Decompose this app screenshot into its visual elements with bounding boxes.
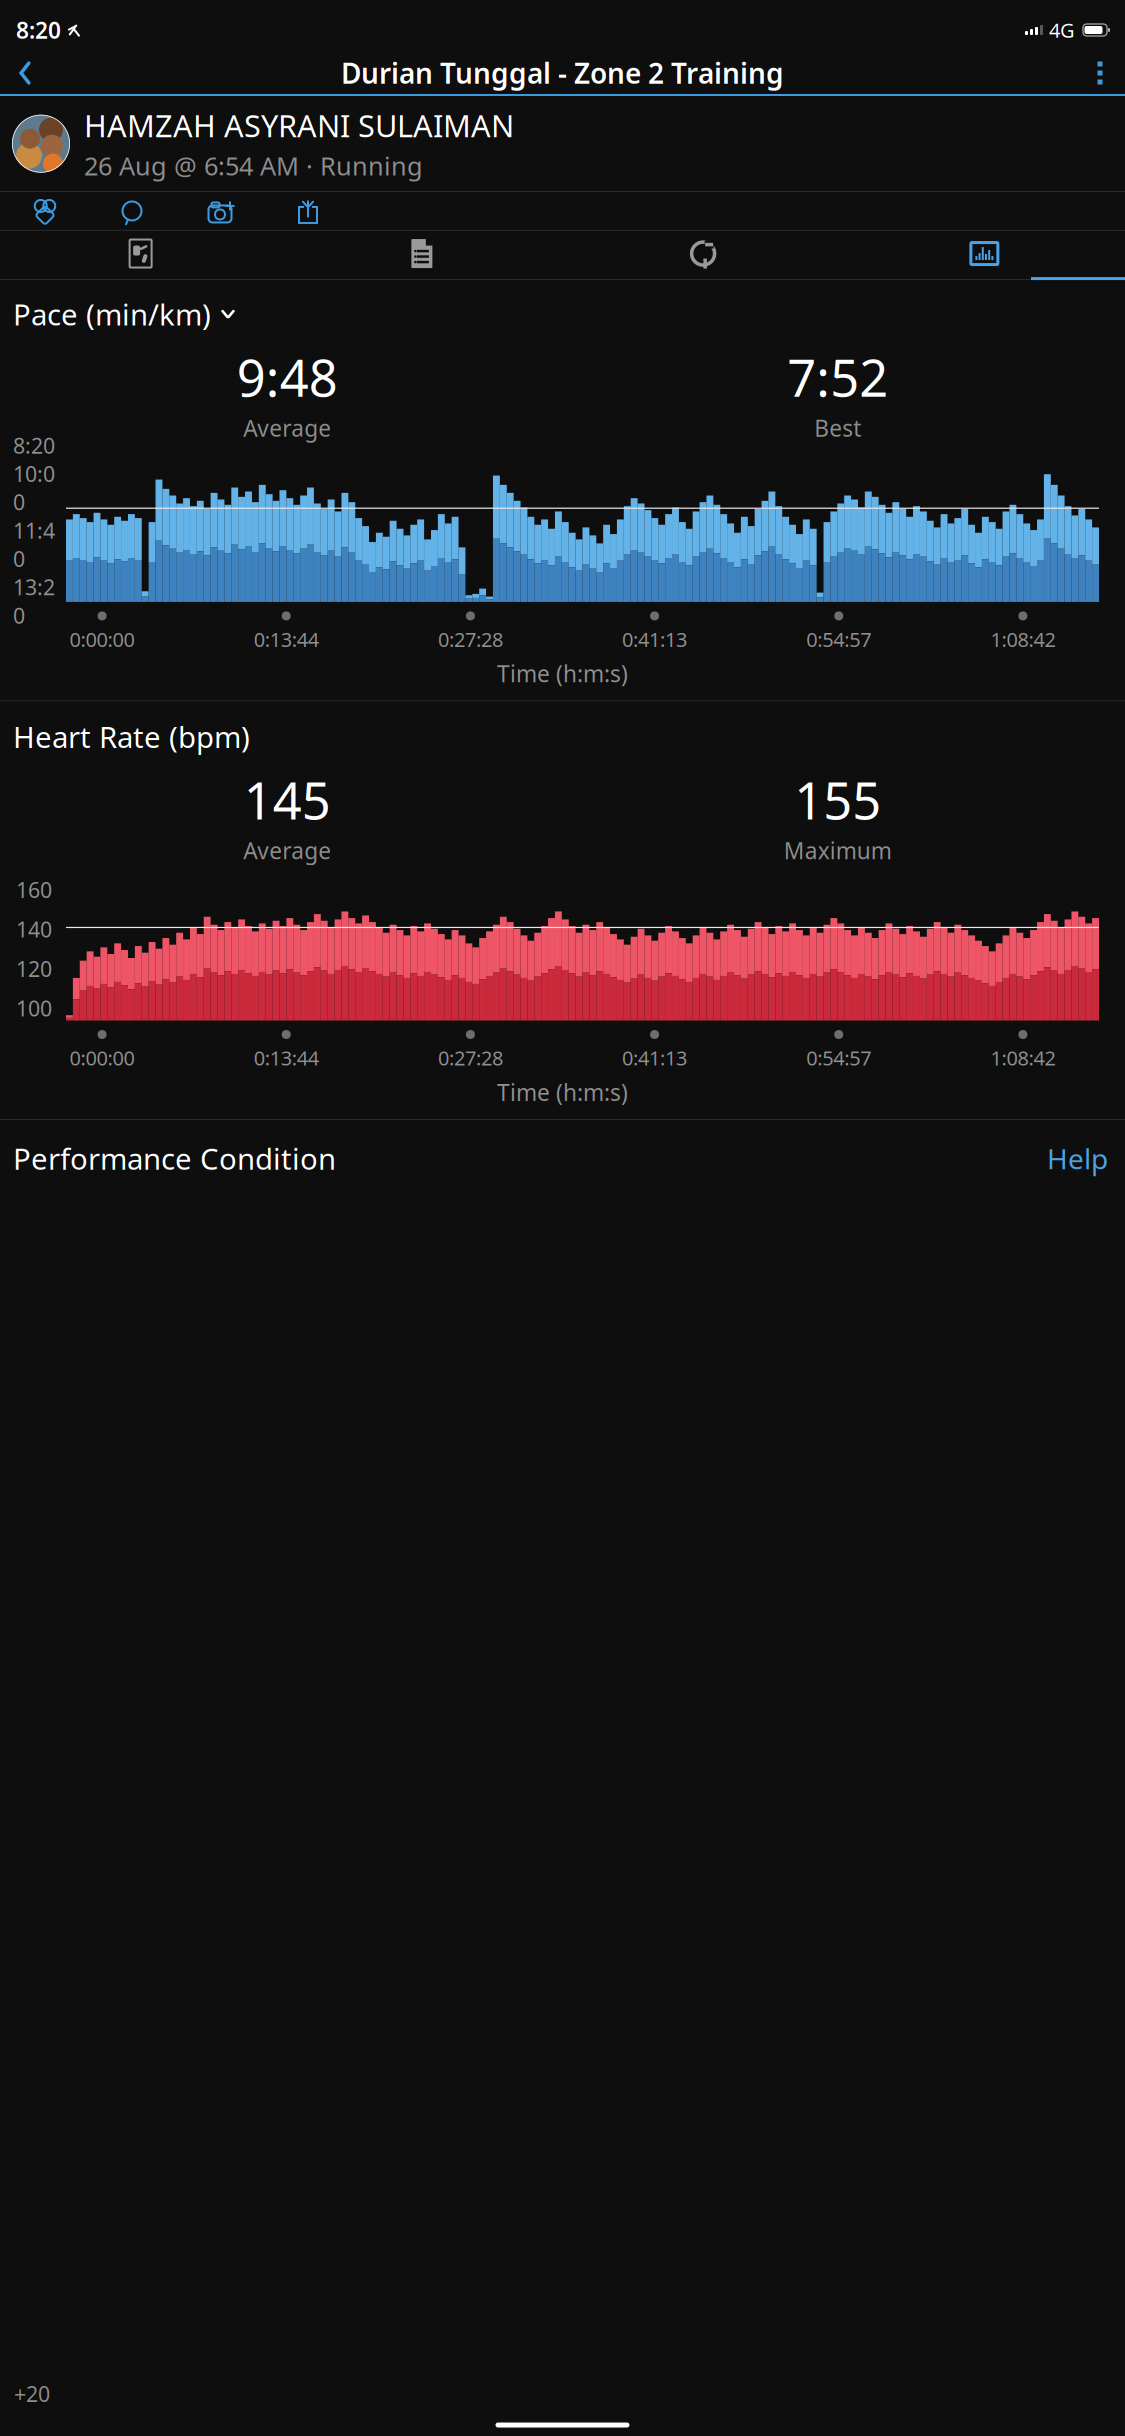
staticText: Help [1047, 1140, 1108, 1177]
staticText: Maximum [784, 835, 892, 865]
button[interactable]: More options [1080, 51, 1120, 95]
staticText: 0:54:57 [806, 1044, 871, 1071]
staticText: 0:00:00 [70, 1044, 135, 1071]
staticText: Time (h:m:s) [497, 658, 628, 689]
staticText: Average [243, 413, 331, 443]
staticText: Time (h:m:s) [497, 1077, 628, 1107]
staticText: 145 [244, 766, 331, 833]
button[interactable]: Help [1043, 1136, 1112, 1181]
staticText: 0:41:13 [622, 626, 687, 652]
staticText: 100 [16, 994, 52, 1022]
button[interactable]: Pace (min/km) [0, 281, 1125, 338]
button[interactable]: Map [0, 231, 281, 277]
staticText: 0:41:13 [622, 1044, 687, 1071]
staticText: Heart Rate (bpm) [13, 717, 250, 756]
staticText: 0:27:28 [438, 1044, 503, 1071]
staticText: Pace (min/km) [13, 295, 211, 334]
staticText: 155 [794, 766, 881, 833]
button[interactable]: Back [5, 51, 45, 95]
staticText: 0:27:28 [438, 626, 503, 652]
staticText: Average [243, 835, 331, 865]
staticText: +20 [14, 2380, 50, 2408]
button[interactable]: Charts [844, 231, 1125, 277]
staticText: 7:52 [787, 343, 888, 411]
staticText: Best [814, 413, 861, 443]
staticText: HAMZAH ASYRANI SULAIMAN [84, 105, 514, 146]
staticText: 0:54:57 [806, 626, 871, 652]
staticText: 140 [16, 915, 52, 943]
staticText: 26 Aug @ 6:54 AM · Running [84, 149, 423, 182]
button[interactable]: Details [281, 231, 562, 277]
staticText: 11:40 [13, 516, 55, 573]
staticText: 8:20 [16, 15, 61, 45]
staticText: Performance Condition [13, 1139, 336, 1178]
staticText: 4G [1049, 17, 1075, 43]
staticText: Durian Tunggal - Zone 2 Training [341, 54, 784, 92]
button[interactable]: Add photo [176, 192, 264, 230]
staticText: 160 [16, 875, 52, 904]
button[interactable]: HAMZAH ASYRANI SULAIMAN [0, 96, 1125, 191]
button[interactable]: Comment [88, 192, 176, 230]
staticText: 0:13:44 [254, 1044, 319, 1071]
staticText: 1:08:42 [990, 1044, 1055, 1071]
staticText: 120 [16, 955, 52, 983]
staticText: 13:20 [13, 573, 55, 630]
staticText: 8:20 [13, 431, 55, 460]
staticText: 1:08:42 [990, 626, 1055, 652]
staticText: 0:00:00 [70, 626, 135, 652]
button[interactable]: Share [264, 192, 352, 230]
staticText: 9:48 [237, 343, 338, 411]
button[interactable]: Like [2, 192, 88, 230]
button[interactable]: Laps [562, 231, 844, 277]
staticText: 10:00 [13, 460, 55, 516]
staticText: 0:13:44 [254, 626, 319, 652]
